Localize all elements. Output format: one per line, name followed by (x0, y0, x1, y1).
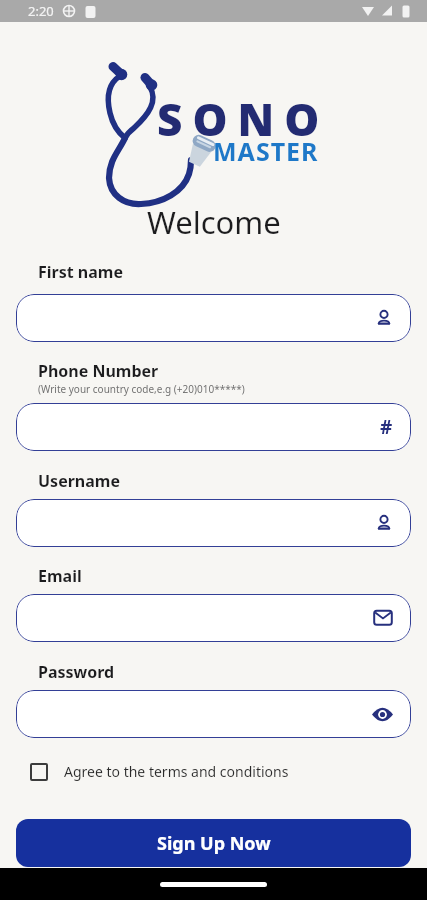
staticText: # (380, 414, 393, 440)
staticText: Sign Up Now (157, 831, 271, 856)
button[interactable] (16, 499, 411, 547)
button[interactable]: Agree to the terms and conditions (30, 762, 289, 781)
button[interactable]: Sign Up Now (16, 819, 411, 867)
staticText: Phone Number (38, 360, 159, 382)
staticText: First name (38, 261, 123, 283)
staticText: Welcome (147, 201, 281, 243)
staticText: (Write your country code,e.g (+20)010***… (38, 382, 245, 396)
button[interactable] (16, 690, 411, 738)
staticText: SONO (157, 89, 330, 149)
staticText: Username (38, 470, 120, 492)
button[interactable] (16, 294, 411, 342)
staticText: Email (38, 565, 82, 587)
button[interactable] (16, 594, 411, 642)
staticText: 2:20 (28, 2, 54, 20)
button[interactable]: # (16, 403, 411, 451)
staticText: Password (38, 661, 115, 683)
staticText: Agree to the terms and conditions (64, 762, 289, 781)
staticText: MASTER (213, 134, 319, 168)
